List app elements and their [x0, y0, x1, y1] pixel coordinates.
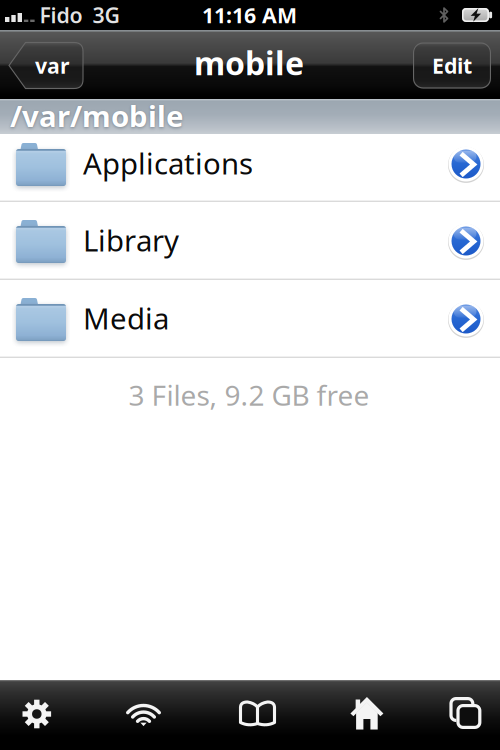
button[interactable]: Show Media details [448, 301, 483, 337]
button[interactable]: Media [0, 280, 500, 358]
button[interactable]: Show Library details [448, 223, 483, 259]
staticText: 11:16 AM [202, 1, 297, 29]
staticText: mobile [194, 42, 304, 84]
button[interactable]: Library [0, 202, 500, 280]
staticText: 3 Files, 9.2 GB free [128, 376, 369, 414]
staticText: Library [83, 220, 179, 259]
button[interactable]: Show Applications details [448, 146, 483, 182]
staticText: Fido [39, 1, 82, 29]
staticText: Edit [432, 51, 472, 80]
button[interactable]: Wi-Fi transfer [103, 684, 183, 742]
button[interactable]: var [9, 42, 83, 88]
button[interactable]: Home [327, 684, 407, 742]
button[interactable]: Applications [0, 134, 500, 202]
staticText: Applications [83, 143, 253, 182]
button[interactable]: Clipboard [425, 684, 500, 742]
button[interactable]: Settings [0, 685, 77, 743]
staticText: var [35, 51, 70, 80]
button[interactable]: Edit [413, 42, 491, 88]
button[interactable]: Bookmarks [217, 684, 297, 742]
staticText: Media [83, 298, 169, 337]
staticText: 3G [92, 1, 119, 29]
staticText: /var/mobile [10, 96, 184, 135]
